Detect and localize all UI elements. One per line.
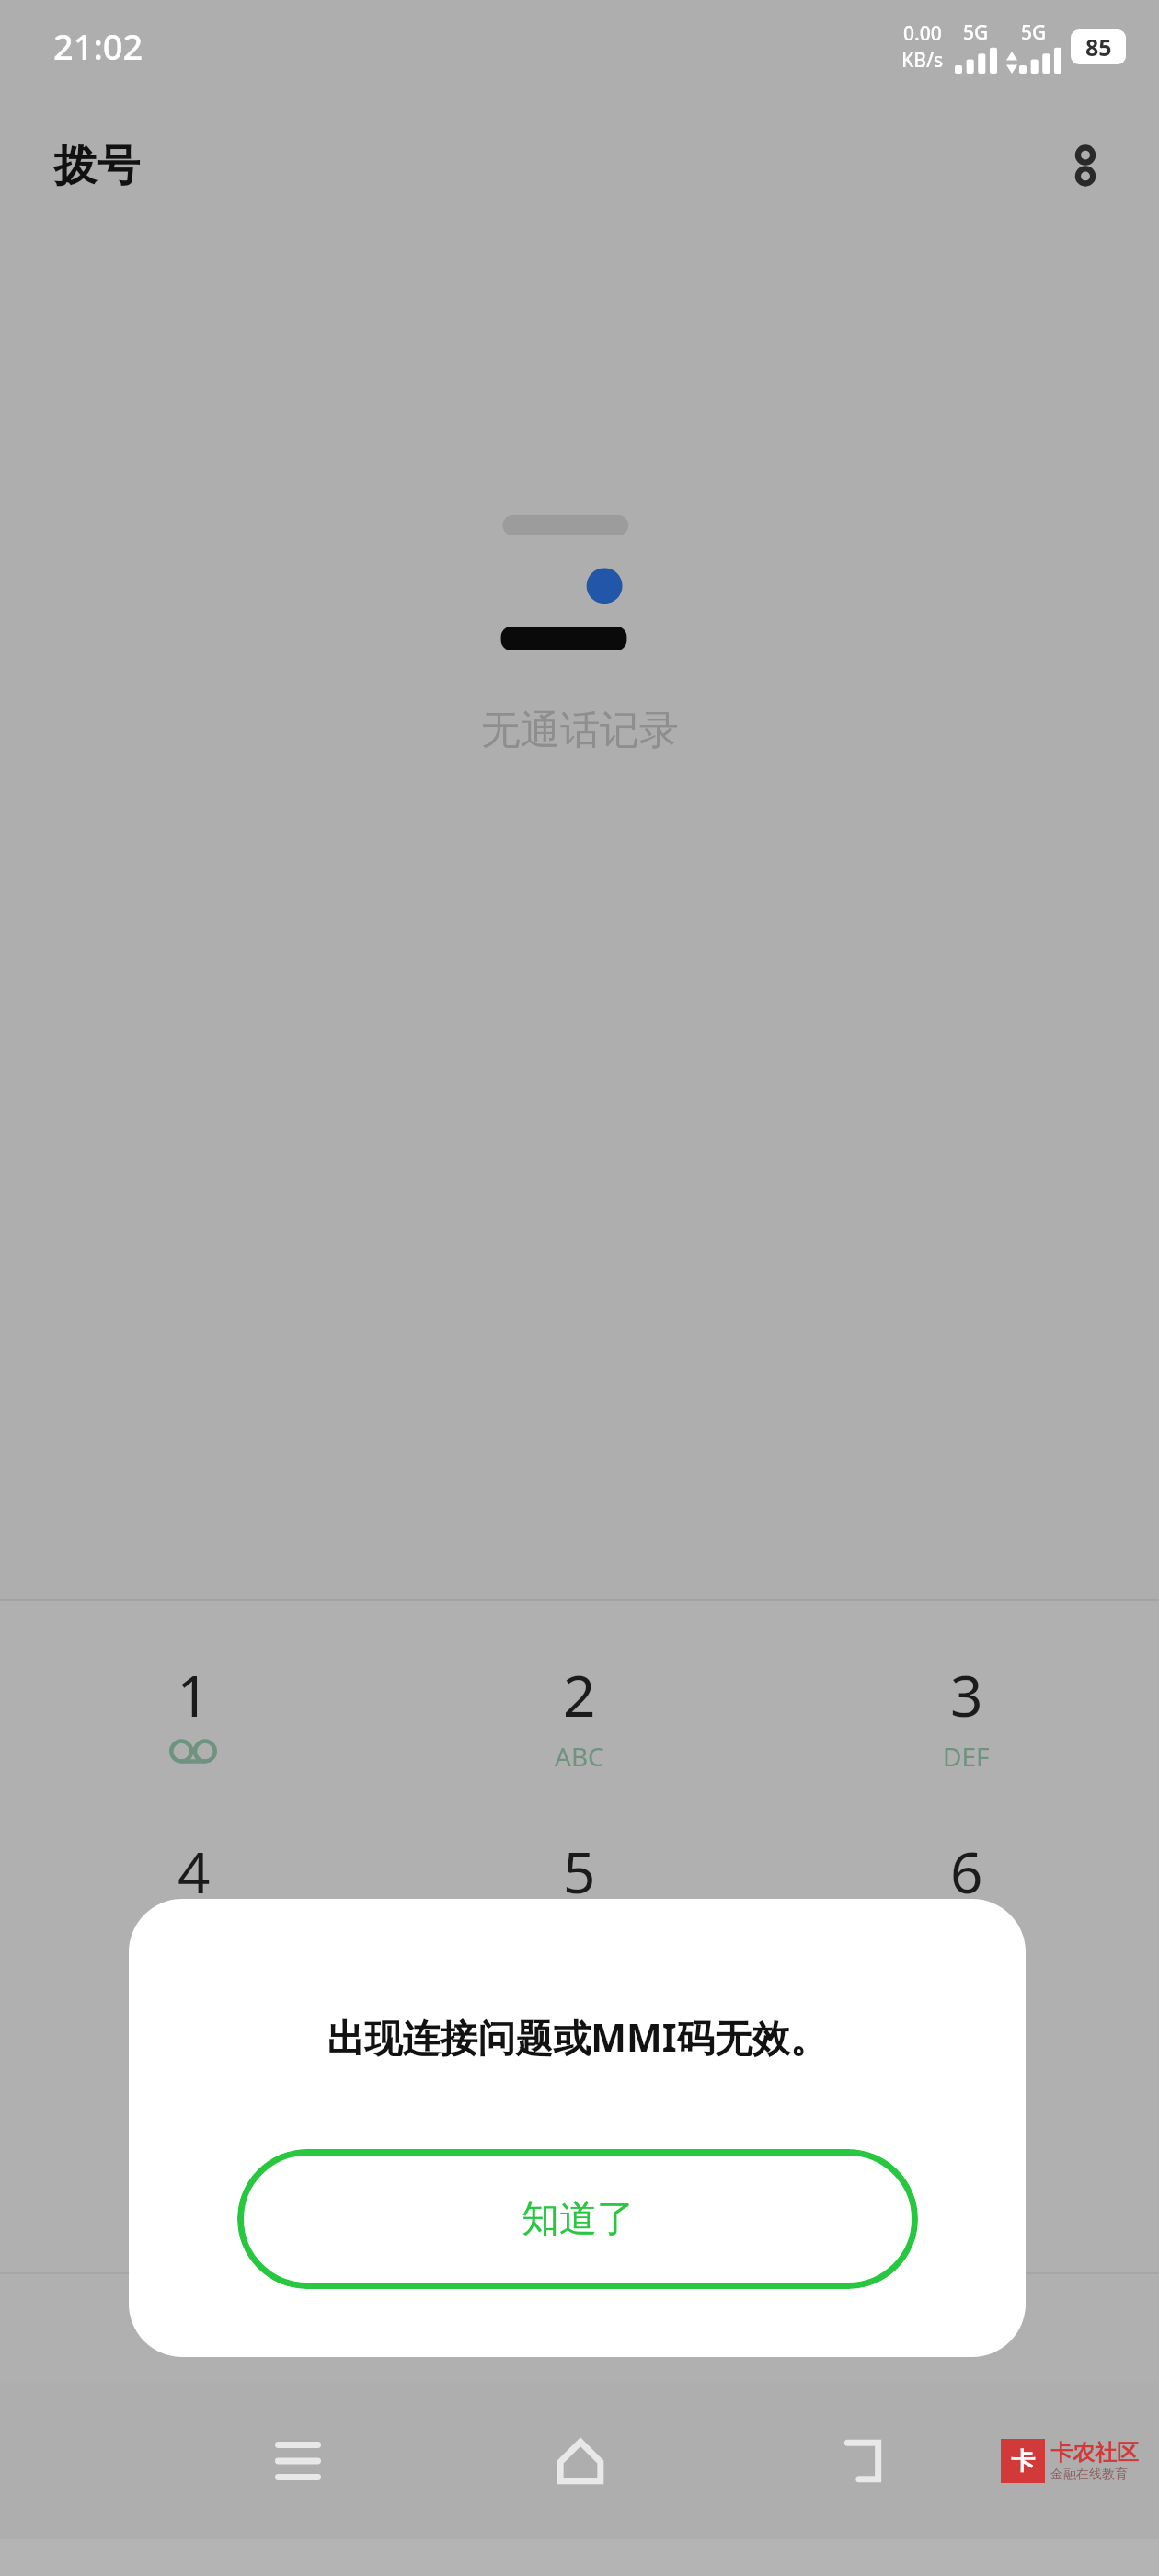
button[interactable]: 5 xyxy=(386,1833,773,1971)
button[interactable]: 0 xyxy=(386,2186,773,2272)
staticText: 2 xyxy=(563,1656,596,1733)
staticText: KB/s xyxy=(901,47,944,74)
staticText: 5G xyxy=(963,19,989,46)
staticText: 21:02 xyxy=(53,22,143,70)
staticText: 卡农社区 xyxy=(1050,2439,1139,2467)
button[interactable]: 知道了 xyxy=(237,2149,918,2289)
staticText: 0.00 xyxy=(903,20,942,47)
button[interactable]: Recents xyxy=(156,2383,439,2539)
button[interactable]: 6 xyxy=(773,1833,1159,1971)
button[interactable]: More options xyxy=(1049,129,1122,202)
staticText: 3 xyxy=(950,1656,983,1733)
staticText: 金融在线教育 xyxy=(1050,2467,1128,2483)
staticText: 卡 xyxy=(1011,2446,1035,2477)
button[interactable]: 3 xyxy=(773,1656,1159,1794)
staticText: 8 xyxy=(564,2009,597,2087)
staticText: 出现连接问题或MMI码无效。 xyxy=(327,2011,828,2063)
staticText: 5 xyxy=(563,1833,596,1910)
button[interactable]: * xyxy=(0,2186,386,2272)
staticText: 1 xyxy=(177,1656,210,1733)
staticText: 拨号 xyxy=(53,139,140,193)
staticText: 6 xyxy=(950,1833,983,1910)
staticText: 0 xyxy=(563,2186,596,2263)
button[interactable]: 1 xyxy=(0,1656,386,1794)
staticText: 4 xyxy=(178,1833,211,1910)
staticText: 知道了 xyxy=(522,2195,635,2243)
button[interactable]: 9 xyxy=(773,2009,1159,2147)
staticText: 无通话记录 xyxy=(481,706,679,755)
button[interactable]: Home xyxy=(439,2383,721,2539)
staticText: ABC xyxy=(555,1739,604,1774)
button[interactable]: 联系人 xyxy=(386,2274,773,2383)
button[interactable]: Back xyxy=(721,2383,1004,2539)
staticText: DEF xyxy=(943,1739,990,1774)
button[interactable]: 7 xyxy=(0,2009,386,2147)
button[interactable]: 拨号 xyxy=(0,2274,386,2383)
button[interactable]: 2 xyxy=(386,1656,773,1794)
staticText: 85 xyxy=(1085,31,1112,63)
button[interactable]: # xyxy=(773,2186,1159,2272)
button[interactable]: 4 xyxy=(0,1833,386,1971)
button[interactable]: 8 xyxy=(386,2009,773,2147)
button[interactable]: 收藏 xyxy=(773,2274,1159,2383)
staticText: 5G xyxy=(1021,19,1047,46)
